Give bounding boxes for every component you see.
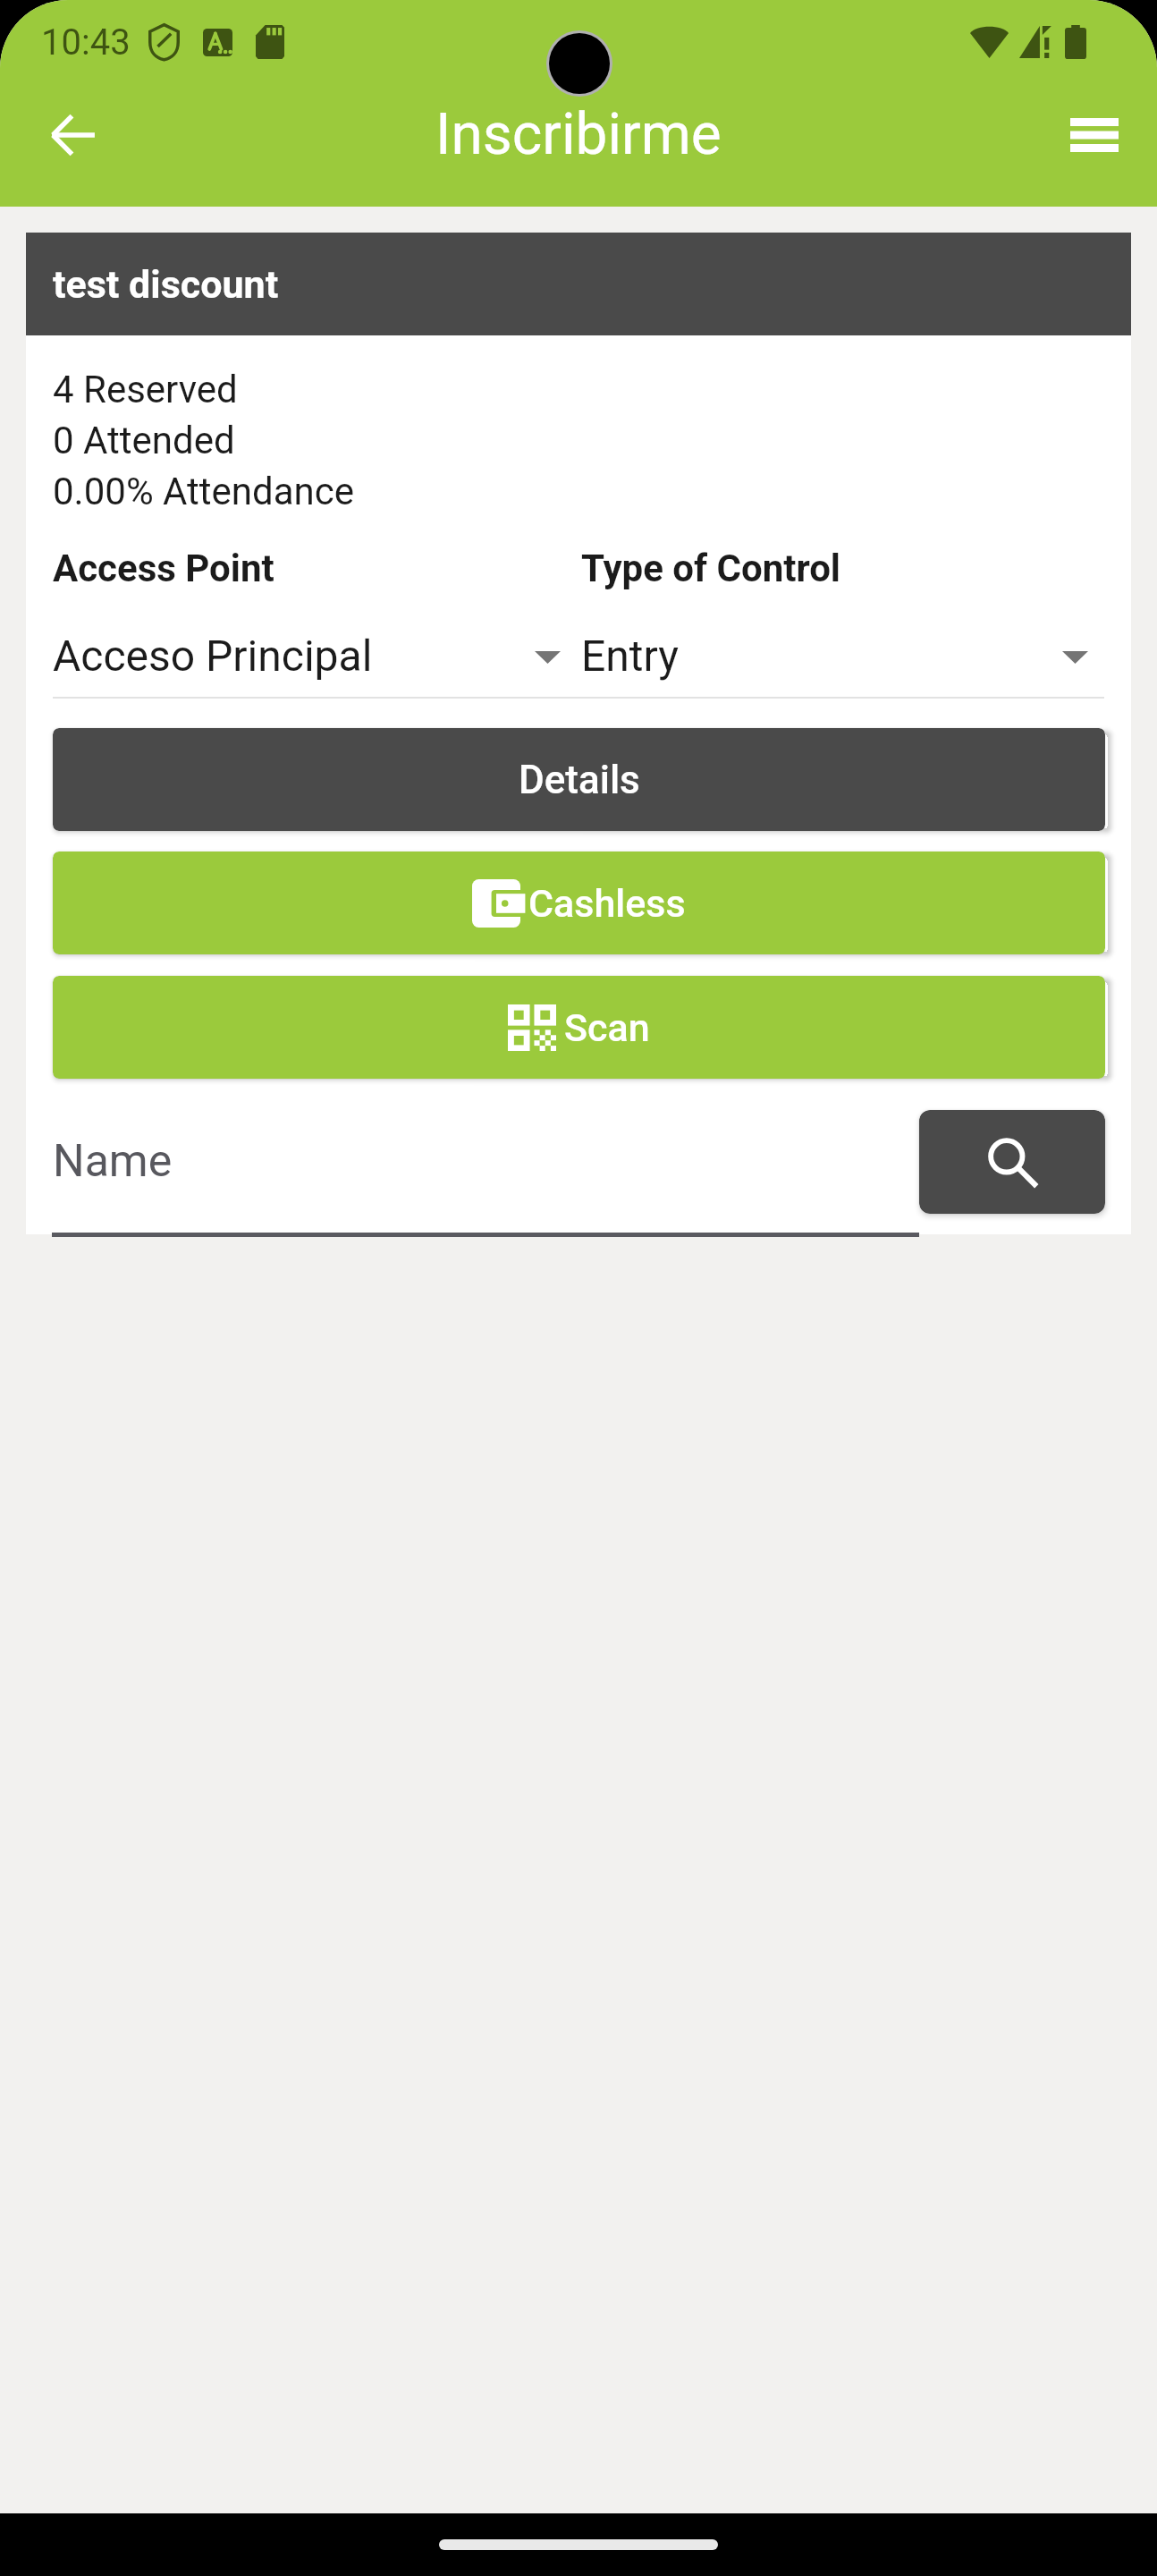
staticText: 10:43 [41, 21, 131, 64]
staticText: Entry [581, 631, 679, 681]
staticText: Cashless [528, 881, 686, 926]
staticText: Name [53, 1135, 173, 1188]
button[interactable]: Entry [581, 617, 1104, 696]
staticText: Type of Control [581, 547, 840, 590]
button[interactable]: Acceso Principal [53, 617, 560, 696]
staticText: test discount [53, 262, 279, 307]
staticText: 4 Reserved 0 Attended 0.00% Attendance [53, 368, 355, 513]
staticText: Details [519, 757, 640, 803]
button[interactable]: Back [32, 94, 114, 176]
button[interactable]: Cashless [53, 852, 1105, 954]
staticText: Scan [564, 1005, 650, 1050]
button[interactable]: Menu [1053, 94, 1136, 176]
staticText: Access Point [53, 547, 274, 590]
staticText: Acceso Principal [53, 631, 373, 681]
staticText: Inscribirme [435, 101, 722, 168]
button[interactable]: Search [919, 1110, 1105, 1214]
button[interactable]: Scan [53, 976, 1105, 1079]
button[interactable]: Details [53, 728, 1105, 831]
